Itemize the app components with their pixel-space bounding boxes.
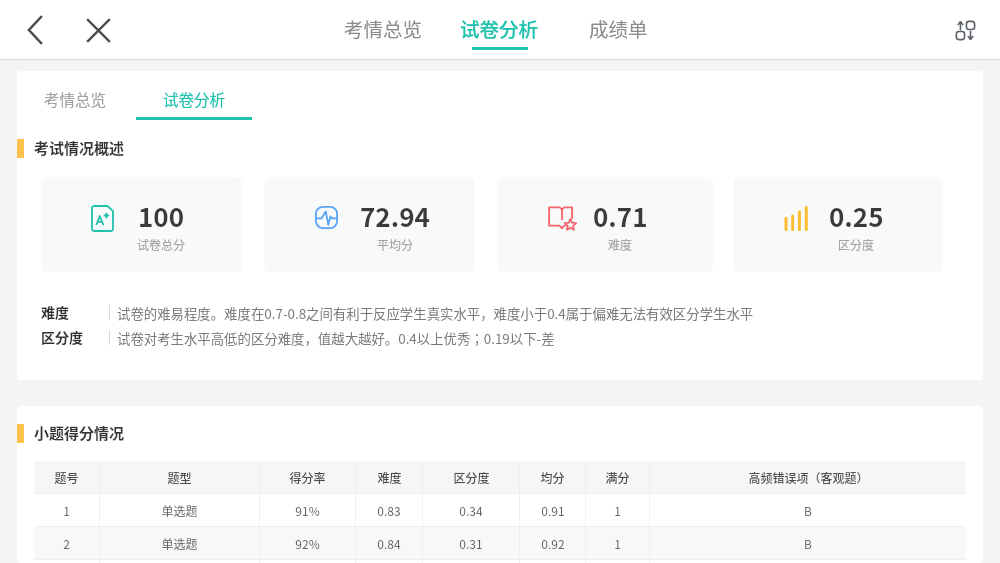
- staticText: 0.25: [829, 197, 884, 235]
- staticText: 考情总览: [344, 14, 423, 42]
- staticText: 题型: [167, 469, 192, 486]
- staticText: 试卷总分: [137, 236, 186, 253]
- staticText: 0.31: [459, 535, 483, 552]
- staticText: 难度: [377, 469, 402, 486]
- staticText: 试卷分析: [163, 88, 226, 110]
- staticText: 单选题: [161, 535, 198, 552]
- button[interactable]: 0.25: [733, 177, 943, 272]
- staticText: 难度: [41, 302, 69, 322]
- button[interactable]: 1: [34, 494, 966, 526]
- staticText: 成绩单: [589, 14, 648, 42]
- staticText: B: [804, 535, 812, 552]
- staticText: 1: [614, 535, 621, 552]
- staticText: 考情总览: [44, 88, 107, 110]
- staticText: 0.83: [377, 502, 401, 519]
- button[interactable]: 成绩单: [589, 11, 648, 50]
- button[interactable]: 72.94: [264, 177, 475, 272]
- button[interactable]: 试卷分析: [136, 79, 252, 120]
- staticText: 0.92: [541, 535, 565, 552]
- staticText: 区分度: [838, 236, 875, 253]
- staticText: 0.84: [377, 535, 401, 552]
- staticText: 1: [614, 502, 621, 519]
- staticText: 72.94: [360, 197, 430, 235]
- staticText: 单选题: [161, 502, 198, 519]
- button[interactable]: Compare: [948, 13, 982, 47]
- staticText: 难度: [608, 236, 633, 253]
- staticText: 小题得分情况: [34, 422, 125, 444]
- staticText: 均分: [540, 469, 565, 486]
- staticText: 题号: [54, 469, 79, 486]
- staticText: 得分率: [289, 469, 326, 486]
- staticText: 试卷分析: [460, 14, 539, 42]
- staticText: 0.34: [459, 502, 483, 519]
- staticText: 试卷的难易程度。难度在0.7-0.8之间有利于反应学生真实水平，难度小于0.4属…: [117, 303, 754, 322]
- button[interactable]: 2: [34, 527, 966, 559]
- button[interactable]: 考情总览: [20, 79, 130, 120]
- staticText: 平均分: [377, 236, 414, 253]
- button[interactable]: 考情总览: [344, 11, 423, 50]
- staticText: 高频错误项（客观题）: [748, 469, 869, 486]
- staticText: 0.91: [541, 502, 565, 519]
- staticText: 91%: [295, 502, 320, 519]
- staticText: 100: [138, 197, 185, 235]
- staticText: 试卷对考生水平高低的区分难度，值越大越好。0.4以上优秀；0.19以下-差: [117, 328, 555, 347]
- button[interactable]: Back: [17, 12, 53, 48]
- button[interactable]: Close: [80, 12, 116, 48]
- staticText: 满分: [605, 469, 630, 486]
- staticText: 2: [63, 535, 70, 552]
- button[interactable]: 100: [41, 177, 242, 272]
- staticText: 92%: [295, 535, 320, 552]
- staticText: 0.71: [593, 197, 648, 235]
- button[interactable]: 试卷分析: [460, 11, 539, 50]
- staticText: 区分度: [453, 469, 490, 486]
- button[interactable]: 0.71: [497, 177, 713, 272]
- staticText: 1: [63, 502, 70, 519]
- staticText: B: [804, 502, 812, 519]
- staticText: 区分度: [41, 327, 83, 347]
- staticText: 考试情况概述: [34, 137, 125, 159]
